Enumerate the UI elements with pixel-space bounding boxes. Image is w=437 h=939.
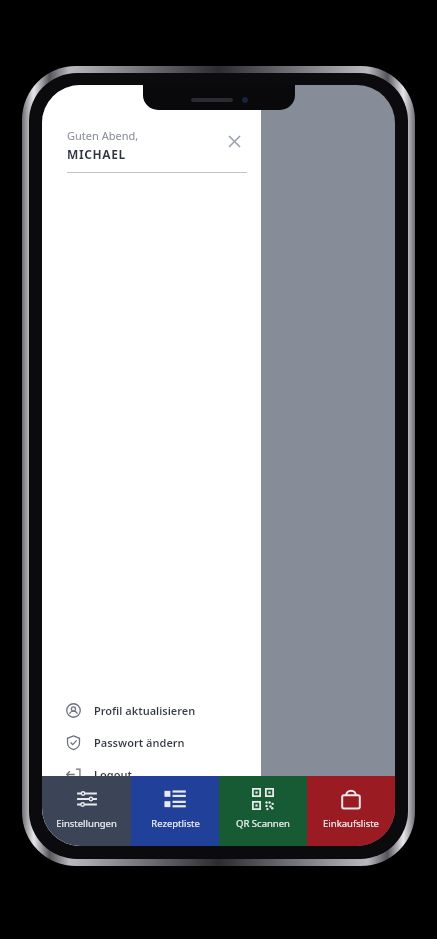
staticText: Version 0.19.0 alpha — [94, 799, 199, 814]
staticText: Einkaufsliste — [323, 817, 379, 830]
button[interactable]: Einstellungen — [42, 776, 131, 846]
staticText: Logout — [94, 767, 132, 782]
button[interactable]: Version 0.19.0 alpha — [42, 790, 261, 822]
staticText: QR Scannen — [236, 817, 290, 830]
staticText: Passwort ändern — [94, 735, 185, 750]
button[interactable]: Profil aktualisieren — [42, 694, 261, 726]
button[interactable]: Passwort ändern — [42, 726, 261, 758]
button[interactable]: Schließen — [221, 128, 247, 154]
staticText: Profil aktualisieren — [94, 703, 196, 718]
staticText: Einstellungen — [56, 817, 117, 830]
button[interactable]: QR Scannen — [219, 776, 307, 846]
staticText: Guten Abend, — [67, 128, 139, 143]
staticText: MICHAEL — [67, 146, 126, 162]
button[interactable]: Logout — [42, 758, 261, 790]
button[interactable]: Rezeptliste — [131, 776, 219, 846]
button[interactable]: Einkaufsliste — [307, 776, 395, 846]
staticText: Rezeptliste — [151, 817, 200, 830]
